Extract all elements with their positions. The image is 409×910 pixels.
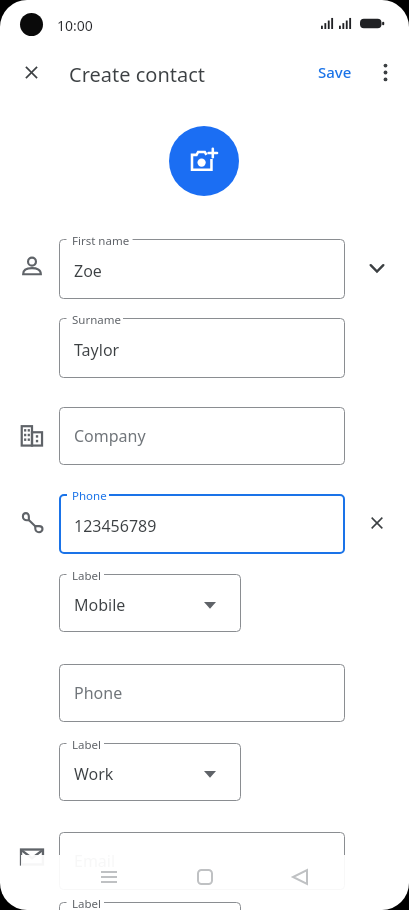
button[interactable]: More options xyxy=(369,56,402,89)
staticText: 10:00 xyxy=(57,16,93,35)
staticText: Label xyxy=(72,737,102,753)
button[interactable]: Save xyxy=(313,58,357,86)
button[interactable]: Expand name fields xyxy=(363,254,391,282)
button[interactable]: Close xyxy=(14,55,49,90)
button[interactable]: Add photo xyxy=(169,126,239,196)
staticText: Phone xyxy=(74,682,123,704)
staticText: 123456789 xyxy=(74,515,157,537)
button[interactable]: Home xyxy=(184,856,226,898)
staticText: Company xyxy=(74,425,146,447)
other: Email xyxy=(18,843,46,871)
staticText: Phone xyxy=(72,488,107,504)
other: Phone xyxy=(18,509,46,537)
button[interactable]: Phone xyxy=(59,664,345,722)
button[interactable]: First name xyxy=(59,239,345,299)
staticText: Mobile xyxy=(74,594,126,616)
button[interactable]: Company xyxy=(59,407,345,465)
staticText: Email xyxy=(74,850,116,872)
button[interactable]: Surname xyxy=(59,318,345,378)
staticText: Taylor xyxy=(74,339,120,361)
button[interactable]: Recent apps xyxy=(88,856,130,898)
button[interactable]: Back xyxy=(279,856,321,898)
staticText: Zoe xyxy=(74,260,102,282)
staticText: Work xyxy=(74,763,114,785)
staticText: Create contact xyxy=(69,61,206,88)
button[interactable]: Label xyxy=(59,743,241,801)
button[interactable]: Label xyxy=(59,902,241,910)
other: Company xyxy=(18,422,46,450)
staticText: Save xyxy=(318,62,352,82)
button[interactable]: Phone xyxy=(59,494,345,554)
button[interactable]: Email xyxy=(59,832,345,890)
staticText: Surname xyxy=(72,312,121,328)
staticText: First name xyxy=(72,233,130,249)
button[interactable]: Label xyxy=(59,574,241,632)
staticText: Label xyxy=(72,568,102,584)
staticText: Label xyxy=(72,896,102,910)
other: Name xyxy=(18,253,46,281)
button[interactable]: Remove phone xyxy=(363,509,391,537)
